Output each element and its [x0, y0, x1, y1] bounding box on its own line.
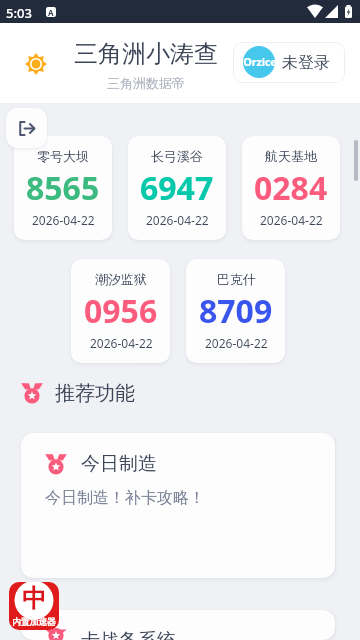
- staticText: 5:03: [6, 4, 32, 22]
- staticText: 0284: [254, 166, 328, 210]
- staticText: 6947: [140, 166, 214, 210]
- button[interactable]: 零号大坝: [14, 136, 112, 240]
- button[interactable]: 潮汐监狱: [71, 259, 170, 363]
- button[interactable]: 今日制造: [21, 433, 335, 578]
- staticText: 未登录: [282, 53, 330, 73]
- staticText: 中: [22, 583, 47, 614]
- staticText: 推荐功能: [55, 381, 135, 406]
- button[interactable]: 长弓溪谷: [128, 136, 226, 240]
- staticText: 0956: [84, 289, 158, 333]
- button[interactable]: 推荐功能: [21, 381, 135, 406]
- button[interactable]: 巴克什: [186, 259, 285, 363]
- button[interactable]: 卡战务系统: [21, 610, 335, 640]
- staticText: Orzice: [243, 54, 275, 69]
- button[interactable]: 航天基地: [242, 136, 340, 240]
- staticText: 航天基地: [265, 148, 317, 164]
- staticText: 长弓溪谷: [151, 148, 203, 164]
- staticText: 卡战务系统: [81, 629, 176, 640]
- staticText: 今日制造！补卡攻略！: [45, 488, 205, 508]
- staticText: 今日制造: [81, 452, 157, 476]
- staticText: A: [48, 7, 54, 17]
- button[interactable]: Sun: [25, 53, 47, 75]
- staticText: 2026-04-22: [146, 212, 209, 228]
- staticText: 8565: [26, 166, 100, 210]
- button[interactable]: 内置加速器: [9, 582, 59, 630]
- staticText: 2026-04-22: [260, 212, 323, 228]
- button[interactable]: Orzice: [233, 42, 345, 83]
- staticText: 8709: [199, 289, 273, 333]
- staticText: 三角洲数据帝: [107, 75, 185, 91]
- staticText: 2026-04-22: [90, 335, 153, 351]
- staticText: 2026-04-22: [32, 212, 95, 228]
- button[interactable]: 退出登录: [6, 108, 47, 148]
- staticText: 内置加速器: [12, 616, 56, 627]
- staticText: 2026-04-22: [205, 335, 268, 351]
- staticText: 潮汐监狱: [95, 271, 147, 287]
- staticText: 巴克什: [217, 271, 256, 287]
- staticText: 零号大坝: [37, 148, 89, 164]
- staticText: 三角洲小涛查: [74, 39, 218, 69]
